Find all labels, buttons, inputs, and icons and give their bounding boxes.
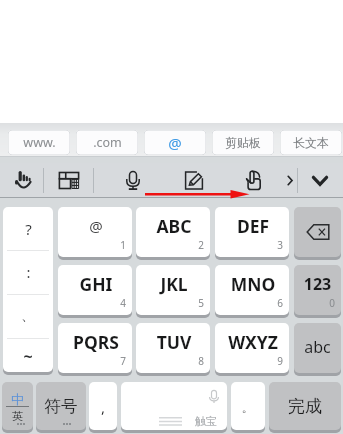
button[interactable]: , [89,382,117,430]
button[interactable]: 。 [231,382,265,430]
staticText: : [26,262,31,282]
staticText: 7 [120,354,126,368]
staticText: 英 [2,409,33,423]
button[interactable]: TUV [136,323,210,373]
staticText: 。 [231,399,265,415]
staticText: ABC [137,214,210,238]
staticText: JKL [137,272,210,296]
button[interactable]: ~ [3,338,53,372]
button[interactable]: DEF [215,207,289,257]
button[interactable]: .com [76,130,138,155]
button[interactable]: : [3,250,53,294]
staticText: MNO [216,272,289,296]
staticText: DEF [216,214,289,238]
staticText: @ [59,216,132,236]
staticText: abc [294,336,341,358]
staticText: 5 [198,296,204,310]
button[interactable]: Voice input [120,163,146,198]
staticText: ~ [23,345,33,367]
button[interactable]: 中 [2,382,33,430]
button[interactable]: Compose note [181,163,207,198]
button[interactable]: @ [58,207,132,257]
staticText: 8 [198,354,204,368]
button[interactable]: MNO [215,265,289,315]
staticText: GHI [59,272,132,296]
button[interactable]: 完成 [269,382,341,430]
button[interactable]: 符号 [36,382,86,430]
staticText: WXYZ [216,330,289,354]
staticText: 1 [120,238,126,252]
staticText: 9 [277,354,283,368]
staticText: ? [25,219,32,239]
button[interactable]: JKL [136,265,210,315]
button[interactable]: ABC [136,207,210,257]
button[interactable]: www. [8,130,70,155]
staticText: 6 [277,296,283,310]
staticText: .com [93,134,122,151]
staticText: 3 [277,238,283,252]
button[interactable]: 、 [3,294,53,338]
staticText: 剪贴板 [225,135,261,150]
button[interactable]: More options [283,163,297,198]
button[interactable]: 触宝 [121,382,227,430]
other: Backspace [294,207,341,257]
staticText: 4 [120,296,126,310]
staticText: 长文本 [293,135,329,150]
staticText: , [89,397,117,417]
staticText: 、 [21,307,35,325]
button[interactable]: Keyboard layout [56,163,82,198]
staticText: 123 [294,273,341,295]
button[interactable]: 剪贴板 [212,130,274,155]
staticText: PQRS [59,330,132,354]
button[interactable]: ? [3,207,53,250]
staticText: TUV [137,330,210,354]
button[interactable]: 长文本 [280,130,342,155]
button[interactable]: PQRS [58,323,132,373]
staticText: 2 [198,238,204,252]
button[interactable]: Hide keyboard [307,163,333,198]
staticText: 完成 [269,396,341,417]
button[interactable]: WXYZ [215,323,289,373]
button[interactable]: Tap gesture [242,163,268,198]
button[interactable]: GHI [58,265,132,315]
button[interactable]: Handwriting input [10,163,36,198]
staticText: 0 [329,296,335,310]
button[interactable]: 123 [294,265,341,315]
staticText: 符号 [36,396,86,417]
staticText: 中 [2,391,33,407]
button[interactable]: Backspace [294,207,341,257]
button[interactable]: @ [144,130,206,155]
button[interactable]: abc [294,323,341,373]
staticText: www. [23,134,56,151]
staticText: @ [168,133,182,153]
staticText: 触宝 [195,414,217,428]
